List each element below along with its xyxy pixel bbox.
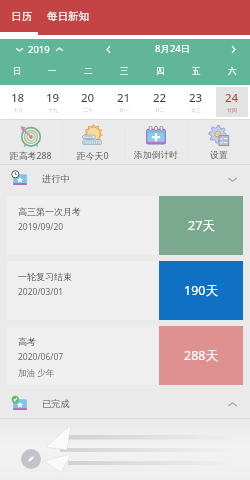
staticText: 四 — [156, 66, 165, 77]
staticText: 日历 — [11, 10, 32, 23]
button[interactable]: 24 — [214, 85, 250, 119]
staticText: 二 — [84, 66, 93, 77]
button[interactable]: 21 — [106, 85, 142, 119]
staticText: 廿一 — [119, 107, 129, 113]
staticText: 2019 — [28, 43, 50, 56]
staticText: 18 — [11, 90, 25, 106]
staticText: 二十 — [83, 107, 93, 113]
staticText: 23 — [189, 90, 203, 106]
staticText: 2019/09/20 — [18, 221, 64, 233]
button[interactable]: Next week — [226, 42, 240, 56]
staticText: 加油 少年 — [18, 367, 55, 379]
button[interactable]: 高三第一次月考 — [7, 196, 243, 255]
staticText: 288天 — [184, 347, 218, 364]
button[interactable]: Navigate — [21, 449, 41, 469]
staticText: 24 — [225, 90, 239, 106]
staticText: 十八 — [13, 107, 23, 113]
staticText: 190天 — [184, 282, 218, 299]
button[interactable]: 22 — [142, 85, 178, 119]
staticText: 21 — [117, 90, 131, 106]
staticText: 添加倒计时 — [134, 150, 178, 161]
staticText: 设置 — [210, 150, 228, 161]
staticText: 进行中 — [42, 173, 70, 185]
staticText: 每日新知 — [47, 10, 89, 23]
staticText: 三 — [120, 66, 129, 77]
staticText: 20 — [81, 90, 95, 106]
staticText: 距今天0 — [77, 150, 109, 162]
button[interactable]: 高考 — [7, 326, 243, 385]
staticText: 高三第一次月考 — [18, 206, 81, 217]
staticText: 日 — [13, 66, 22, 77]
staticText: 已完成 — [42, 398, 70, 410]
button[interactable]: 日历 — [2, 0, 40, 32]
button[interactable]: 每日新知 — [40, 0, 96, 32]
button[interactable]: Previous year — [12, 42, 26, 56]
button[interactable]: 进行中 — [0, 165, 250, 193]
staticText: 距高考288 — [10, 150, 52, 162]
button[interactable]: 已完成 — [0, 390, 250, 418]
button[interactable]: 19 — [35, 85, 70, 119]
button[interactable]: 距今天0 — [62, 120, 124, 164]
staticText: 六 — [228, 66, 237, 77]
button[interactable]: 一轮复习结束 — [7, 261, 243, 320]
staticText: 22 — [153, 90, 167, 106]
staticText: 廿三 — [191, 107, 201, 113]
staticText: 2020/06/07 — [18, 351, 64, 363]
staticText: 一 — [48, 66, 57, 77]
staticText: 高考 — [18, 336, 36, 347]
button[interactable]: 设置 — [187, 120, 250, 164]
staticText: 8月24日 — [155, 42, 191, 55]
staticText: 一轮复习结束 — [18, 271, 72, 282]
staticText: 廿二 — [155, 107, 165, 113]
staticText: 五 — [192, 66, 201, 77]
staticText: 2020/03/01 — [18, 286, 64, 298]
button[interactable]: 18 — [0, 85, 35, 119]
staticText: 十九 — [48, 107, 58, 113]
button[interactable]: Next year — [52, 42, 66, 56]
button[interactable]: 20 — [70, 85, 106, 119]
button[interactable]: 距高考288 — [0, 120, 62, 164]
staticText: 27天 — [188, 217, 215, 234]
staticText: 19 — [46, 90, 60, 106]
button[interactable]: 添加倒计时 — [124, 120, 187, 164]
button[interactable]: Previous week — [101, 42, 115, 56]
button[interactable]: 23 — [178, 85, 214, 119]
staticText: 廿四 — [227, 107, 237, 113]
